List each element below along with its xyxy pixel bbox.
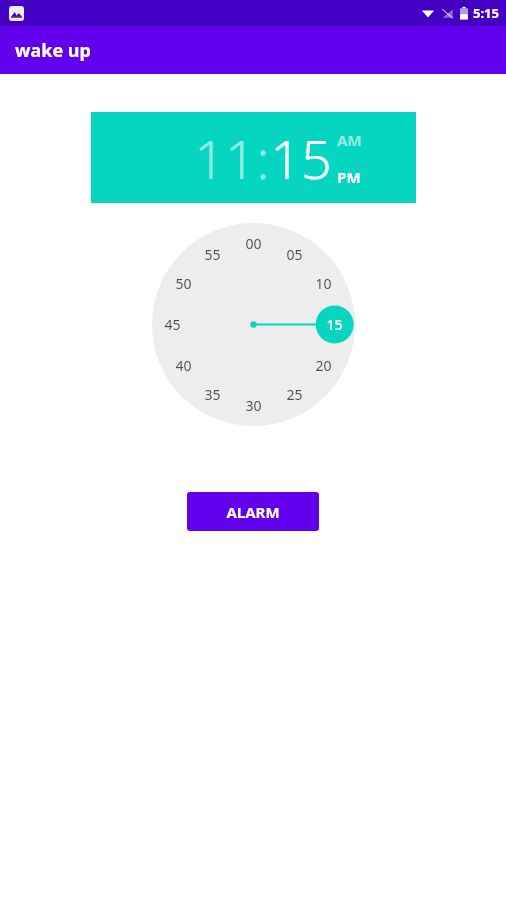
staticText: 50 — [175, 274, 192, 293]
staticText: 40 — [175, 356, 192, 375]
staticText: 10 — [315, 274, 332, 293]
staticText: 55 — [204, 245, 221, 264]
button[interactable]: AM — [337, 130, 362, 150]
staticText: 5:15 — [473, 4, 499, 22]
staticText: 05 — [286, 245, 303, 264]
button[interactable]: PM — [337, 167, 361, 187]
button[interactable]: 11 — [194, 121, 256, 195]
staticText: : — [256, 121, 270, 195]
staticText: wake up — [15, 38, 91, 63]
button[interactable]: ALARM — [187, 492, 319, 531]
staticText: 30 — [245, 396, 262, 415]
staticText: ALARM — [226, 502, 280, 522]
staticText: 35 — [204, 385, 221, 404]
staticText: 25 — [286, 385, 303, 404]
button[interactable]: Minute picker — [152, 223, 355, 426]
staticText: 00 — [245, 234, 262, 253]
button[interactable]: 15 — [270, 121, 332, 195]
staticText: 20 — [315, 356, 332, 375]
staticText: 15 — [326, 315, 343, 334]
staticText: 45 — [164, 315, 181, 334]
